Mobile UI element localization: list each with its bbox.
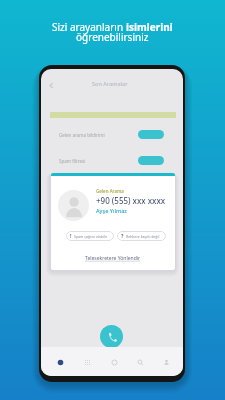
staticText: Spam filtresi <box>59 158 86 164</box>
button[interactable]: Back <box>48 82 55 89</box>
staticText: Son Aramalar <box>92 80 128 87</box>
button[interactable]: Calls <box>101 352 127 372</box>
staticText: isimlerini <box>126 20 173 34</box>
staticText: Rehbere kayıtlı değil <box>126 234 160 239</box>
staticText: +90 (555) xxx xxxx <box>96 195 166 206</box>
button[interactable]: ! <box>66 231 114 241</box>
staticText: ? <box>121 233 124 240</box>
button[interactable]: ? <box>117 231 166 241</box>
staticText: Ayşe Yılmaz <box>96 207 127 214</box>
staticText: Sizi arayanların <box>52 20 126 34</box>
button[interactable]: Recents <box>47 352 74 372</box>
button[interactable]: Spam filtresi <box>59 156 164 165</box>
button[interactable]: Gelen arama bildirimi <box>59 130 164 139</box>
button[interactable]: Telesekretere Yönlendir <box>85 255 141 262</box>
button[interactable]: Keypad <box>74 352 101 372</box>
button[interactable]: Profile <box>153 352 179 372</box>
button[interactable]: Messages <box>127 352 153 372</box>
staticText: öğrenebilirsiniz <box>76 30 149 44</box>
staticText: ! <box>70 233 72 240</box>
staticText: Gelen Arama <box>96 188 124 194</box>
staticText: Spam çağrısı olabilir <box>74 234 108 239</box>
button[interactable]: Dial <box>100 325 123 348</box>
staticText: Gelen arama bildirimi <box>59 132 105 138</box>
